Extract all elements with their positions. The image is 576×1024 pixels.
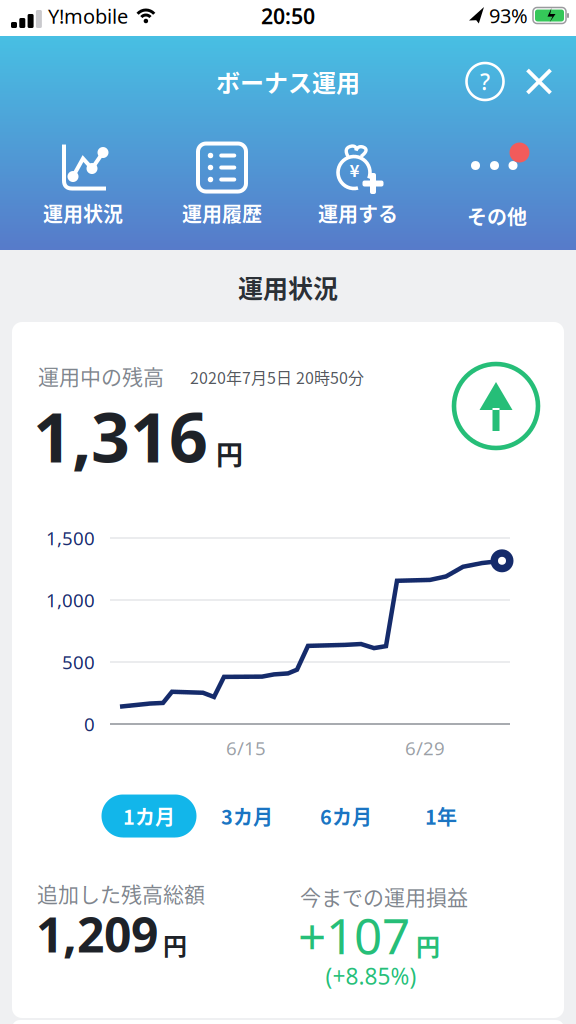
staticText: 6/15 — [226, 736, 266, 760]
staticText: 1カ月 — [123, 801, 175, 830]
staticText: 1,209 — [36, 902, 158, 966]
staticText: 3カ月 — [221, 801, 273, 830]
staticText: ボーナス運用 — [216, 64, 360, 99]
button[interactable]: ¥ — [318, 142, 398, 227]
staticText: 1,316 — [33, 391, 208, 481]
staticText: 1年 — [425, 801, 457, 830]
staticText: 運用する — [318, 198, 398, 227]
staticText: 20:50 — [261, 2, 315, 30]
staticText: ¥ — [349, 157, 359, 182]
staticText: 運用状況 — [238, 269, 338, 305]
staticText: 追加した残高総額 — [37, 878, 205, 908]
button[interactable]: その他 — [467, 139, 527, 230]
staticText: +107 — [298, 902, 410, 968]
staticText: 1,500 — [46, 526, 95, 550]
staticText: (+8.85%) — [325, 961, 416, 991]
staticText: 500 — [62, 650, 95, 674]
staticText: Y!mobile — [48, 3, 128, 29]
staticText: 円 — [163, 927, 187, 962]
staticText: その他 — [467, 201, 527, 230]
staticText: 0 — [84, 712, 95, 736]
staticText: 運用状況 — [43, 198, 123, 227]
button[interactable]: ヘルプ — [463, 59, 507, 103]
button[interactable]: 運用履歴 — [182, 142, 262, 227]
staticText: 93% — [489, 2, 528, 29]
staticText: 1,000 — [46, 588, 95, 612]
staticText: 2020年7月5日 20時50分 — [190, 365, 364, 389]
staticText: 運用中の残高 — [38, 360, 164, 391]
staticText: 6/29 — [405, 736, 445, 760]
button[interactable]: 閉じる — [524, 67, 553, 96]
staticText: 円 — [416, 928, 440, 963]
staticText: ? — [480, 66, 490, 96]
staticText: 6カ月 — [320, 801, 372, 830]
staticText: 運用履歴 — [182, 198, 262, 227]
staticText: 今までの運用損益 — [300, 881, 468, 911]
button[interactable]: 1年 — [406, 794, 476, 837]
button[interactable]: 1カ月 — [101, 794, 196, 837]
button[interactable]: 3カ月 — [207, 794, 287, 837]
button[interactable]: 6カ月 — [306, 794, 386, 837]
button[interactable]: 運用状況 — [43, 142, 123, 227]
staticText: 円 — [216, 434, 243, 473]
